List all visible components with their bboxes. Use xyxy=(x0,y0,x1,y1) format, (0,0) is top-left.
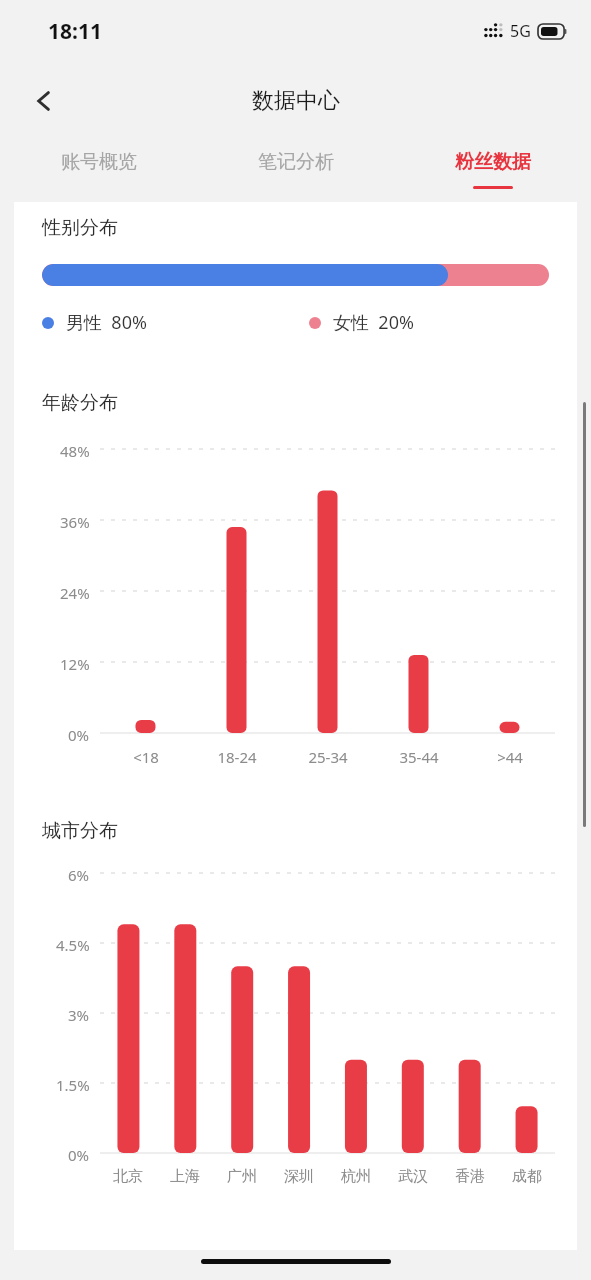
staticText: 账号概览 xyxy=(61,150,137,174)
staticText: 数据中心 xyxy=(252,87,340,115)
staticText: 24% xyxy=(60,583,90,599)
staticText: 成都 xyxy=(512,1167,542,1186)
staticText: 武汉 xyxy=(398,1167,428,1186)
staticText: 0% xyxy=(68,725,90,741)
staticText: 4.5% xyxy=(56,935,90,951)
staticText: 香港 xyxy=(455,1167,485,1186)
staticText: 笔记分析 xyxy=(258,150,334,174)
staticText: <18 xyxy=(133,747,159,767)
button[interactable]: Back xyxy=(22,79,66,123)
staticText: 3% xyxy=(68,1005,90,1021)
staticText: 性别分布 xyxy=(42,216,118,240)
staticText: 深圳 xyxy=(284,1167,314,1186)
staticText: 35-44 xyxy=(399,747,439,767)
staticText: 广州 xyxy=(227,1167,257,1186)
staticText: 36% xyxy=(60,512,90,528)
staticText: 0% xyxy=(68,1145,90,1161)
staticText: 女性 20% xyxy=(333,310,414,335)
button[interactable]: 账号概览 xyxy=(0,140,197,202)
staticText: 城市分布 xyxy=(42,819,118,843)
staticText: 男性 80% xyxy=(66,310,147,335)
staticText: 5G xyxy=(510,20,531,42)
staticText: 25-34 xyxy=(308,747,348,767)
staticText: 18:11 xyxy=(48,17,102,46)
staticText: 粉丝数据 xyxy=(455,150,531,174)
staticText: 北京 xyxy=(113,1167,143,1186)
staticText: >44 xyxy=(497,747,523,767)
button[interactable]: 粉丝数据 xyxy=(394,140,591,202)
button[interactable]: 笔记分析 xyxy=(197,140,394,202)
staticText: 18-24 xyxy=(217,747,257,767)
staticText: 48% xyxy=(60,441,90,457)
staticText: 12% xyxy=(60,654,90,670)
staticText: 年龄分布 xyxy=(42,391,118,415)
staticText: 1.5% xyxy=(56,1075,90,1091)
staticText: 6% xyxy=(68,865,90,881)
staticText: 杭州 xyxy=(341,1167,371,1186)
staticText: 上海 xyxy=(170,1167,200,1186)
